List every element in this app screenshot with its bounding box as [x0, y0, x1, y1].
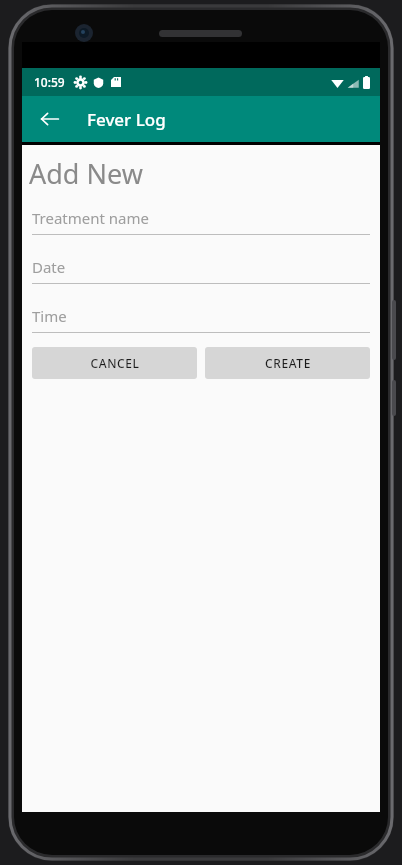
button[interactable]: Treatment name — [32, 208, 370, 235]
staticText: Add New — [29, 155, 143, 192]
staticText: CREATE — [265, 355, 311, 371]
staticText: 10:59 — [34, 74, 65, 90]
button[interactable]: Time — [32, 306, 370, 333]
button[interactable]: CREATE — [205, 347, 370, 379]
button[interactable]: Back — [28, 97, 72, 141]
button[interactable]: Date — [32, 257, 370, 284]
staticText: Time — [32, 306, 67, 326]
staticText: Date — [32, 257, 66, 277]
button[interactable]: CANCEL — [32, 347, 197, 379]
staticText: Treatment name — [32, 208, 150, 228]
staticText: Fever Log — [87, 108, 166, 131]
staticText: CANCEL — [90, 355, 140, 371]
